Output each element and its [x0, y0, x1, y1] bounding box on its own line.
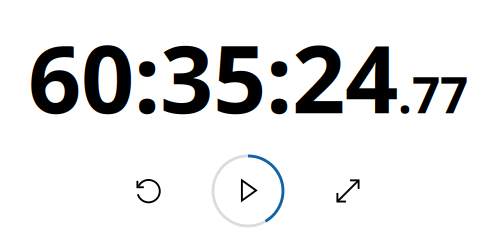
button[interactable]: Expand — [334, 177, 362, 205]
button[interactable]: Reset — [134, 177, 162, 205]
button[interactable]: Start — [213, 156, 283, 226]
staticText: .77 — [398, 61, 468, 127]
staticText: 60:35:24 — [28, 15, 398, 139]
